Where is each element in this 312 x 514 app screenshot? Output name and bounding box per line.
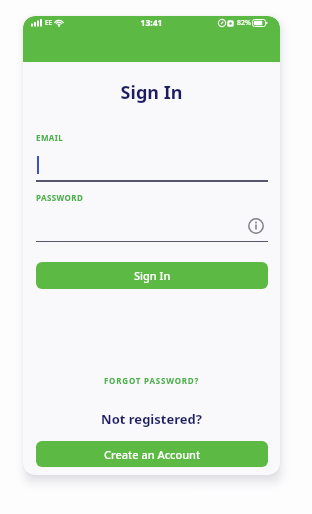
staticText: Not registered? (23, 410, 280, 428)
staticText: EMAIL (36, 132, 64, 143)
staticText: PASSWORD (36, 192, 84, 203)
staticText: EE (45, 18, 53, 27)
staticText: FORGOT PASSWORD? (23, 375, 280, 386)
staticText: 13:41 (23, 17, 280, 29)
button[interactable] (36, 150, 268, 182)
staticText: 82% (237, 18, 251, 28)
button[interactable]: FORGOT PASSWORD? (23, 375, 280, 386)
staticText: Create an Account (104, 447, 201, 462)
staticText: Sign In (23, 80, 280, 105)
button[interactable] (36, 212, 268, 242)
staticText: Sign In (134, 268, 171, 283)
button[interactable]: Sign In (36, 262, 268, 289)
button[interactable]: Create an Account (36, 441, 268, 467)
button[interactable] (248, 218, 264, 234)
